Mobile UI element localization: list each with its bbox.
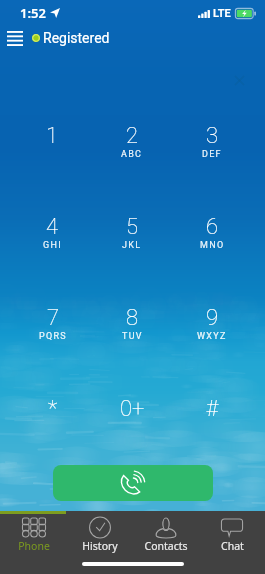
staticText: PQRS (39, 331, 67, 342)
staticText: 8 (126, 305, 139, 331)
staticText: 6 (206, 214, 219, 240)
staticText: GHI (43, 240, 62, 251)
button[interactable]: 4 (13, 201, 92, 292)
button[interactable]: 8 (92, 292, 172, 383)
staticText: 1 (46, 123, 59, 149)
staticText: 0+ (120, 396, 145, 422)
button[interactable]: 0+ (92, 383, 172, 474)
staticText: 2 (126, 123, 139, 149)
button[interactable]: History (67, 518, 133, 553)
staticText: Contacts (144, 539, 188, 553)
button[interactable]: 5 (92, 201, 172, 292)
staticText: ABC (121, 149, 143, 160)
button[interactable]: * (13, 383, 92, 474)
button[interactable]: 6 (172, 201, 252, 292)
staticText: History (82, 539, 118, 553)
button[interactable]: # (172, 383, 252, 474)
staticText: Phone (18, 539, 50, 553)
button[interactable]: 3 (172, 110, 252, 201)
staticText: 4 (46, 214, 59, 240)
button[interactable]: 1 (13, 110, 92, 201)
staticText: 5 (126, 214, 139, 240)
staticText: 7 (47, 305, 60, 331)
staticText: DEF (202, 149, 222, 160)
button[interactable]: Phone (0, 518, 67, 553)
button[interactable]: 2 (92, 110, 172, 201)
staticText: Chat (221, 539, 244, 553)
staticText: JKL (122, 240, 142, 251)
staticText: # (206, 396, 219, 422)
staticText: 1:52 (20, 4, 46, 22)
staticText: 3 (206, 123, 219, 149)
button[interactable]: Chat (199, 518, 265, 553)
staticText: WXYZ (197, 331, 227, 342)
button[interactable]: 9 (172, 292, 252, 383)
button[interactable]: Contacts (133, 518, 199, 553)
staticText: 9 (206, 305, 219, 331)
staticText: LTE (213, 7, 231, 20)
button[interactable]: Call (53, 465, 213, 501)
staticText: TUV (122, 331, 143, 342)
staticText: MNO (200, 240, 225, 251)
button[interactable]: Menu (4, 27, 26, 49)
staticText: Registered (43, 30, 110, 46)
button[interactable]: 7 (13, 292, 92, 383)
staticText: * (48, 396, 58, 422)
